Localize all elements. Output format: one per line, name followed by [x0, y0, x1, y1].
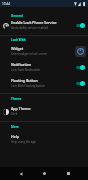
staticText: More: [11, 125, 19, 129]
button[interactable]: Widget: [0, 45, 88, 60]
staticText: General: [11, 14, 23, 18]
button[interactable]: Notification: [0, 61, 88, 76]
staticText: Widget: [11, 46, 24, 51]
button[interactable]: Help: [0, 133, 88, 148]
button[interactable]: Select widget: [75, 46, 86, 57]
staticText: Floating Button: [11, 78, 38, 83]
button[interactable]: Toggle: [76, 23, 85, 28]
button[interactable]: Toggle: [76, 65, 85, 70]
button[interactable]: Enable Lock Phone Service: [0, 19, 88, 34]
button[interactable]: App Theme: [0, 105, 88, 120]
staticText: Lock from Notification: [11, 68, 41, 72]
staticText: Accessibility service enabled: [11, 26, 48, 30]
staticText: App Theme: [11, 106, 31, 111]
staticText: Enable Lock Phone Service: [11, 20, 57, 25]
button[interactable]: Toggle: [76, 81, 85, 86]
button[interactable]: Home: [36, 167, 52, 180]
staticText: Theme: [11, 97, 22, 101]
staticText: Notification: [11, 62, 32, 67]
button[interactable]: Back: [13, 167, 29, 180]
staticText: Help: [11, 134, 19, 139]
staticText: Lock With: [11, 38, 26, 42]
staticText: Select widget to lock screen: [11, 52, 48, 56]
staticText: Dark: [11, 112, 18, 116]
button[interactable]: Recents: [60, 167, 76, 180]
staticText: Lock With Floating button: [11, 84, 45, 88]
staticText: Help using the app: [11, 140, 36, 144]
staticText: 10:44: [2, 2, 11, 6]
button[interactable]: Floating Button: [0, 77, 88, 92]
